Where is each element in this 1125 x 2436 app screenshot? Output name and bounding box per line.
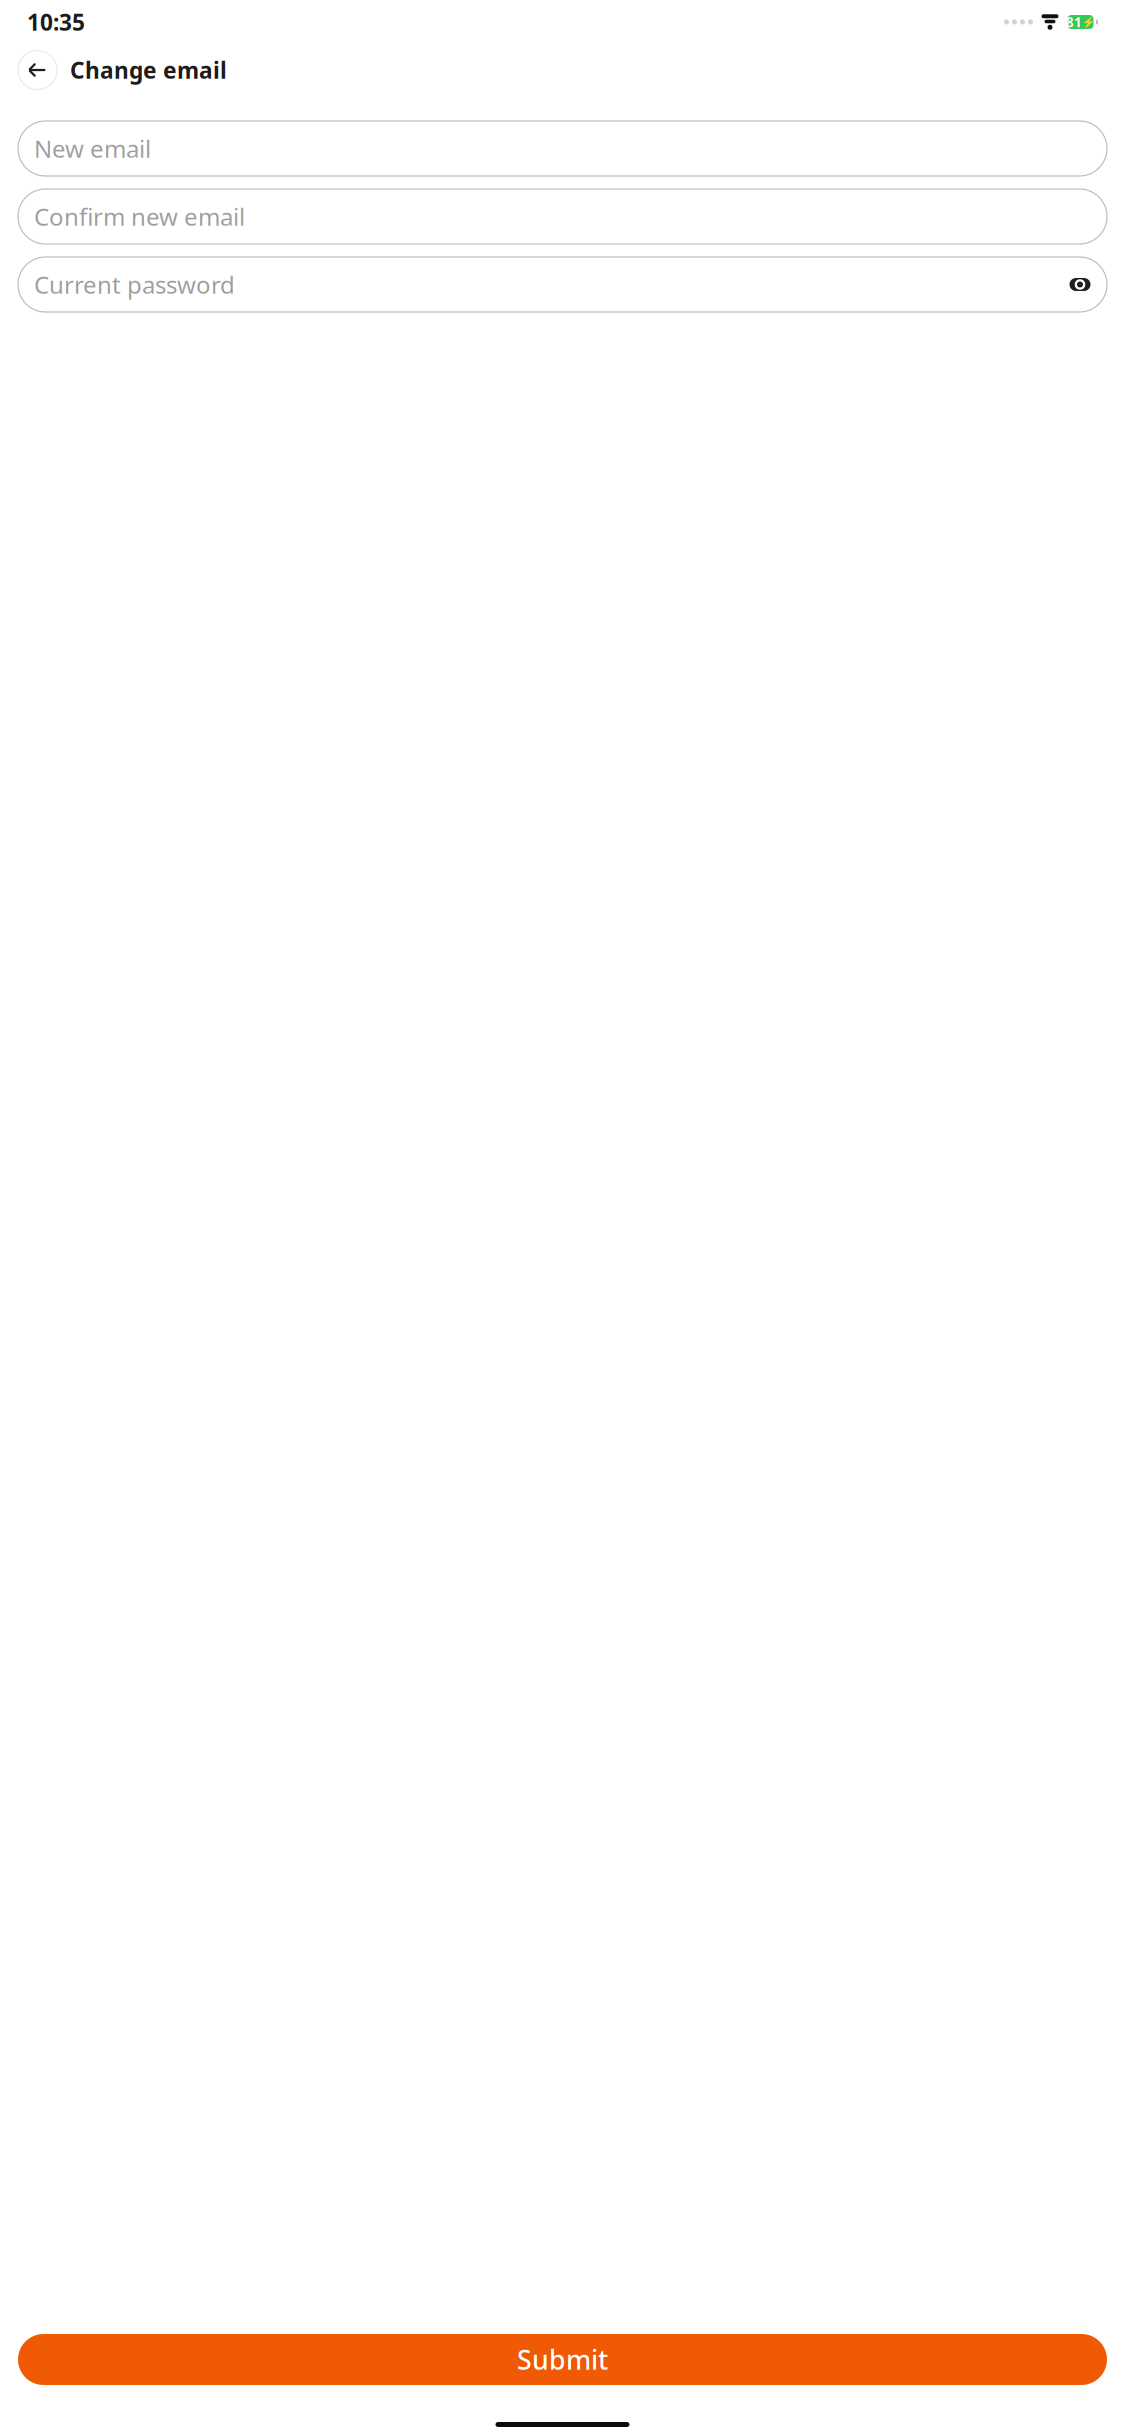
staticText: 81 — [1066, 13, 1082, 31]
staticText: Change email — [70, 55, 227, 85]
staticText: Submit — [517, 2342, 608, 2377]
staticText: Confirm new email — [34, 201, 245, 232]
button[interactable]: Back — [18, 50, 57, 89]
button[interactable]: Submit — [18, 2334, 1107, 2385]
staticText: ⚡ — [1082, 16, 1095, 28]
button[interactable]: Show password — [1065, 269, 1095, 299]
staticText: Current password — [34, 269, 235, 300]
staticText: 10:35 — [27, 7, 85, 37]
staticText: New email — [34, 133, 151, 164]
